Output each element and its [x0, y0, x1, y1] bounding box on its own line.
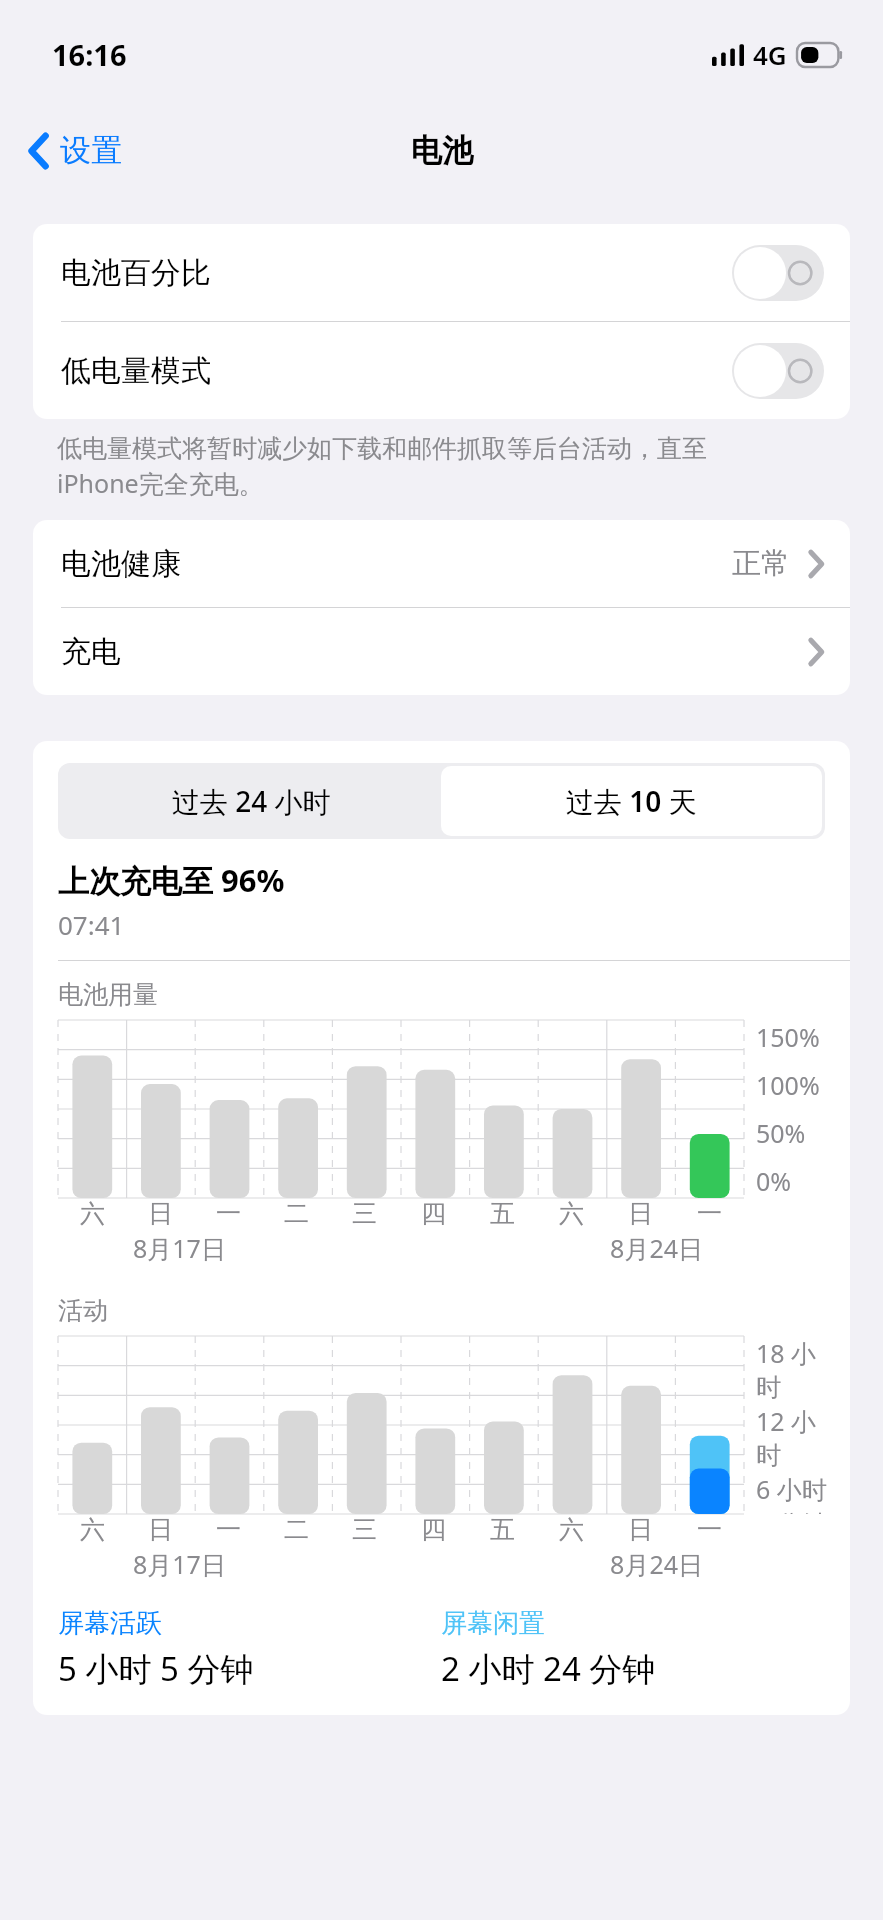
staticText: 18 小时	[756, 1336, 836, 1404]
staticText: 50%	[756, 1116, 806, 1150]
staticText: 日	[148, 1198, 173, 1229]
staticText: 07:41	[58, 907, 125, 942]
staticText: 五	[490, 1198, 515, 1229]
staticText: 5 小时 5 分钟	[58, 1646, 254, 1691]
staticText: 屏幕活跃	[58, 1607, 162, 1640]
staticText: 低电量模式将暂时减少如下载和邮件抓取等后台活动，直至 iPhone完全充电。	[57, 433, 707, 500]
staticText: 充电	[61, 633, 808, 671]
button[interactable]: 过去 10 天	[441, 766, 822, 836]
staticText: 六	[80, 1514, 105, 1545]
staticText: 六	[559, 1514, 584, 1545]
staticText: 日	[628, 1514, 653, 1545]
staticText: 一	[697, 1514, 722, 1545]
staticText: 四	[421, 1514, 446, 1545]
staticText: 一	[216, 1198, 241, 1229]
staticText: 8月17日	[133, 1547, 339, 1581]
staticText: 4G	[753, 37, 787, 72]
staticText: 8月24日	[497, 1231, 703, 1265]
staticText: 一	[697, 1198, 722, 1229]
staticText: 12 小时	[756, 1404, 836, 1472]
button[interactable]: Toggle	[732, 343, 824, 399]
staticText: 设置	[60, 131, 122, 170]
staticText: 二	[284, 1198, 309, 1229]
staticText: 电池百分比	[61, 254, 732, 292]
button[interactable]: 低电量模式	[33, 322, 850, 419]
staticText: 电池用量	[58, 979, 158, 1010]
staticText: 六	[559, 1198, 584, 1229]
staticText: 2 小时 24 分钟	[441, 1646, 656, 1691]
staticText: 上次充电至 96%	[58, 859, 285, 901]
button[interactable]: 充电	[33, 608, 850, 695]
staticText: 0 分钟	[756, 1506, 827, 1514]
staticText: 二	[284, 1514, 309, 1545]
staticText: 日	[148, 1514, 173, 1545]
staticText: 6 小时	[756, 1472, 827, 1506]
staticText: 低电量模式	[61, 352, 732, 390]
staticText: 四	[421, 1198, 446, 1229]
button[interactable]: Toggle	[732, 245, 824, 301]
button[interactable]: 电池百分比	[33, 224, 850, 321]
staticText: 三	[352, 1198, 377, 1229]
staticText: 过去 24 小时	[172, 782, 331, 820]
staticText: 电池健康	[61, 545, 732, 583]
staticText: 100%	[756, 1068, 820, 1102]
staticText: 16:16	[52, 35, 127, 74]
button[interactable]: 过去 24 小时	[61, 766, 441, 836]
staticText: 三	[352, 1514, 377, 1545]
staticText: 活动	[58, 1295, 108, 1326]
staticText: 正常	[732, 545, 790, 582]
button[interactable]: 电池健康	[33, 520, 850, 607]
staticText: 8月17日	[133, 1231, 339, 1265]
button[interactable]: 设置	[22, 125, 128, 176]
staticText: 日	[628, 1198, 653, 1229]
staticText: 电池	[411, 131, 473, 170]
staticText: 屏幕闲置	[441, 1607, 545, 1640]
staticText: 0%	[756, 1164, 792, 1198]
staticText: 150%	[756, 1020, 820, 1054]
staticText: 过去 10 天	[566, 782, 697, 820]
staticText: 一	[216, 1514, 241, 1545]
staticText: 六	[80, 1198, 105, 1229]
staticText: 五	[490, 1514, 515, 1545]
staticText: 8月24日	[497, 1547, 703, 1581]
